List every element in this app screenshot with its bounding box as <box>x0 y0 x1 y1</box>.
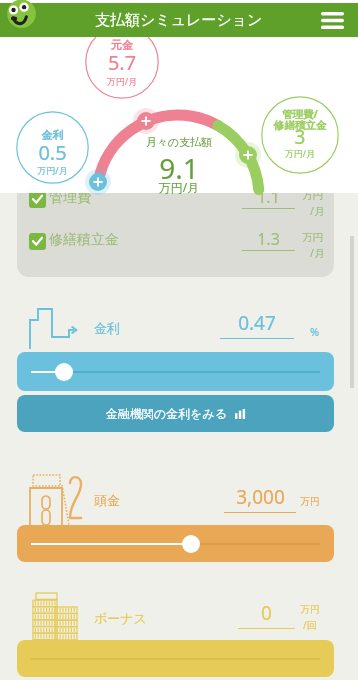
staticText: 頭金 <box>94 492 120 508</box>
staticText: 修繕積立金 <box>49 231 119 249</box>
button[interactable]: 金利を調整 <box>85 169 111 195</box>
staticText: 万円 <box>300 495 320 508</box>
button[interactable]: 管理費を調整 <box>235 142 261 168</box>
staticText: 万円 <box>302 231 323 244</box>
staticText: 万円/月 <box>85 75 159 87</box>
staticText: 月々の支払額 <box>119 135 239 149</box>
staticText: 5.7 <box>85 49 159 76</box>
staticText: 3 <box>261 124 339 150</box>
staticText: 万円/月 <box>119 179 239 195</box>
button[interactable]: 修繕積立金 <box>17 222 334 259</box>
staticText: 万円 <box>300 603 320 616</box>
button[interactable]: 管理費 <box>17 180 334 217</box>
staticText: /月 <box>310 246 325 260</box>
button[interactable]: 頭金スライダー <box>182 535 200 553</box>
staticText: % <box>310 324 320 339</box>
staticText: /月 <box>310 204 325 218</box>
staticText: 管理費/ <box>261 107 339 121</box>
staticText: 金融機関の金利をみる <box>106 406 228 421</box>
staticText: 0.5 <box>16 139 89 166</box>
button[interactable]: 金融機関の金利をみる <box>17 395 334 432</box>
button[interactable]: Menu <box>317 5 347 35</box>
staticText: 9.1 <box>119 149 239 187</box>
staticText: 3,000 <box>236 484 285 510</box>
staticText: 万円/月 <box>261 147 339 159</box>
staticText: 金利 <box>94 320 120 336</box>
staticText: 1.3 <box>242 228 295 250</box>
staticText: ボーナス <box>94 610 147 626</box>
staticText: 元金 <box>85 38 159 52</box>
staticText: 支払額シミュレーション <box>95 11 263 30</box>
button[interactable]: 元金を調整 <box>133 108 159 134</box>
staticText: 修繕積立金 <box>261 119 339 132</box>
button[interactable]: 金利スライダー <box>55 363 73 381</box>
staticText: 万円/月 <box>16 164 89 176</box>
staticText: 0 <box>261 600 272 626</box>
staticText: /回 <box>303 618 317 632</box>
staticText: 0.47 <box>238 310 276 336</box>
staticText: 1.1 <box>242 186 295 208</box>
staticText: 万円 <box>302 189 323 202</box>
staticText: 金利 <box>16 128 89 142</box>
staticText: 管理費 <box>49 189 91 207</box>
